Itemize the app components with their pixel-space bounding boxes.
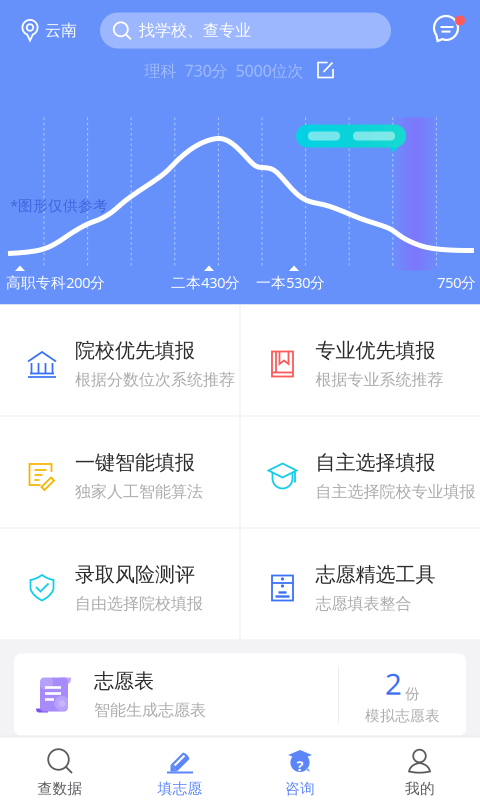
button[interactable]: ? [240,737,360,800]
button[interactable]: 院校优先填报 [0,304,239,415]
staticText: 750分 [437,272,476,292]
staticText: 录取风险测评 [75,562,195,587]
button[interactable]: 理科 730分 5000位次 [144,53,335,87]
button[interactable]: 专业优先填报 [240,304,480,415]
staticText: 自主选择填报 [315,450,435,475]
button[interactable]: 志愿表 [0,653,480,735]
staticText: 一本530分 [256,272,325,292]
staticText: 根据专业系统推荐 [315,370,443,390]
button[interactable]: 我的 [360,737,480,800]
staticText: 志愿精选工具 [315,562,435,587]
staticText: ? [296,755,303,775]
staticText: 找学校、查专业 [139,21,251,40]
staticText: 我的 [405,779,435,797]
staticText: *图形仅供参考 [10,195,108,215]
button[interactable]: 录取风险测评 [0,528,239,639]
staticText: 独家人工智能算法 [75,482,203,502]
staticText: 志愿填表整合 [315,594,411,614]
button[interactable]: 查数据 [0,737,120,800]
staticText: 根据分数位次系统推荐 [75,370,235,390]
staticText: 一键智能填报 [75,450,195,475]
button[interactable]: 找学校、查专业 [100,12,391,48]
button[interactable]: 自主选择填报 [240,416,480,527]
staticText: 智能生成志愿表 [94,700,206,720]
staticText: 查数据 [37,779,82,797]
staticText: 高职专科200分 [6,272,105,292]
staticText: 自主选择院校专业填报 [315,482,475,502]
button[interactable]: Messages [414,8,480,52]
staticText: 二本430分 [171,272,240,292]
staticText: 云南 [45,21,77,40]
staticText: 咨询 [285,779,315,797]
button[interactable]: 填志愿 [120,737,240,800]
button[interactable]: 一键智能填报 [0,416,239,527]
staticText: 份 [405,685,420,703]
staticText: 自由选择院校填报 [75,594,203,614]
staticText: 志愿表 [94,669,154,693]
staticText: 理科 730分 5000位次 [144,60,303,81]
button[interactable]: 云南 [0,10,77,50]
button[interactable]: 志愿精选工具 [240,528,480,639]
staticText: 院校优先填报 [75,338,195,363]
staticText: 填志愿 [157,779,202,797]
staticText: 2 [385,664,402,703]
staticText: 模拟志愿表 [365,707,440,725]
staticText: 专业优先填报 [315,338,435,363]
